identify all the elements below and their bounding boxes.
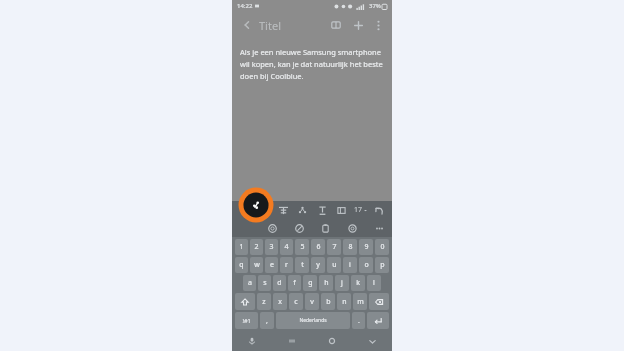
staticText: z (262, 297, 266, 307)
staticText: i (349, 260, 351, 270)
staticText: !#1 (242, 317, 251, 324)
button[interactable]: l (367, 275, 381, 291)
button[interactable]: b (321, 293, 335, 310)
button[interactable]: 6 (311, 239, 325, 255)
button[interactable]: Table (332, 202, 350, 218)
staticText: 37% (369, 2, 381, 10)
button[interactable]: o (359, 257, 373, 273)
staticText: t (301, 260, 304, 270)
button[interactable]: More (370, 220, 388, 236)
button[interactable]: 8 (343, 239, 357, 255)
button[interactable]: p (375, 257, 389, 273)
button[interactable]: !#1 (235, 312, 258, 329)
button[interactable]: i (343, 257, 357, 273)
button[interactable]: w (250, 257, 263, 273)
button[interactable]: d (273, 275, 286, 291)
staticText: h (324, 278, 329, 288)
button[interactable]: t (295, 257, 309, 273)
staticText: b (326, 297, 331, 307)
button[interactable]: m (353, 293, 367, 310)
button[interactable]: s (258, 275, 271, 291)
staticText: 7 (332, 242, 337, 252)
staticText: 5 (300, 242, 305, 252)
staticText: Titel (259, 18, 281, 33)
staticText: 4 (284, 242, 289, 252)
staticText: m (357, 297, 364, 307)
button[interactable]: Enter (367, 312, 389, 329)
staticText: p (380, 260, 385, 270)
button[interactable]: Style (293, 202, 311, 218)
button[interactable]: h (319, 275, 333, 291)
button[interactable]: y (311, 257, 325, 273)
button[interactable]: k (351, 275, 365, 291)
button[interactable]: 1 (235, 239, 248, 255)
button[interactable]: , (260, 312, 274, 329)
button[interactable]: x (273, 293, 287, 310)
staticText: n (342, 297, 347, 307)
button[interactable]: Text format (313, 202, 331, 218)
staticText: 6 (316, 242, 321, 252)
button[interactable]: 9 (359, 239, 373, 255)
button[interactable]: Shift (235, 293, 255, 310)
staticText: o (364, 260, 369, 270)
staticText: v (310, 297, 314, 307)
button[interactable]: a (243, 275, 256, 291)
button[interactable]: f (288, 275, 301, 291)
staticText: 2 (254, 242, 259, 252)
staticText: 8 (348, 242, 353, 252)
button[interactable]: . (352, 312, 365, 329)
staticText: q (239, 260, 244, 270)
staticText: y (316, 260, 320, 270)
button[interactable]: Undo (370, 202, 388, 218)
button[interactable]: Checklist (255, 202, 273, 218)
button[interactable]: c (289, 293, 303, 310)
staticText: 17 (354, 205, 363, 215)
staticText: d (277, 278, 282, 288)
staticText: g (308, 278, 313, 288)
staticText: w (254, 260, 260, 270)
staticText: l (373, 278, 375, 288)
button[interactable]: Hide keyboard (352, 331, 392, 351)
button[interactable]: View mode (327, 16, 345, 34)
button[interactable]: Back (238, 16, 256, 34)
button[interactable]: 0 (375, 239, 389, 255)
button[interactable]: n (337, 293, 351, 310)
button[interactable]: 17 (351, 202, 369, 218)
staticText: 14:22 (237, 2, 253, 10)
staticText: x (278, 297, 282, 307)
button[interactable]: Home (312, 331, 352, 351)
button[interactable]: Sticker (290, 220, 308, 236)
staticText: , (266, 316, 268, 326)
staticText: 9 (364, 242, 369, 252)
staticText: 3 (269, 242, 274, 252)
button[interactable]: Nederlands (276, 312, 350, 329)
button[interactable]: 4 (280, 239, 293, 255)
button[interactable]: Undo list (236, 202, 254, 218)
button[interactable]: Drawing tool highlighted (237, 186, 275, 224)
button[interactable]: Emoji (263, 220, 281, 236)
button[interactable]: Add (349, 16, 367, 34)
staticText: Nederlands (299, 317, 327, 324)
button[interactable]: 2 (250, 239, 263, 255)
button[interactable]: 5 (295, 239, 309, 255)
button[interactable]: Recent apps (272, 331, 312, 351)
staticText: a (248, 278, 252, 288)
button[interactable]: Clipboard (316, 220, 334, 236)
button[interactable]: e (265, 257, 278, 273)
button[interactable]: Backspace (369, 293, 389, 310)
button[interactable]: z (257, 293, 271, 310)
button[interactable]: 7 (327, 239, 341, 255)
button[interactable]: Align (274, 202, 292, 218)
button[interactable]: More options (370, 17, 386, 33)
staticText: s (263, 278, 267, 288)
button[interactable]: v (305, 293, 319, 310)
button[interactable]: g (303, 275, 317, 291)
button[interactable]: Settings (343, 220, 361, 236)
button[interactable]: u (327, 257, 341, 273)
button[interactable]: Voice input (232, 331, 272, 351)
button[interactable]: r (280, 257, 293, 273)
button[interactable]: Draw (236, 220, 254, 236)
button[interactable]: j (335, 275, 349, 291)
button[interactable]: q (235, 257, 248, 273)
button[interactable]: 3 (265, 239, 278, 255)
